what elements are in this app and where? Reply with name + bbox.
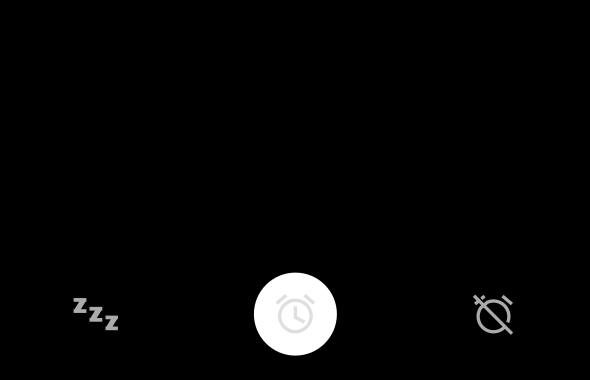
- button[interactable]: Alarm: [240, 259, 350, 369]
- button[interactable]: Stop alarm: [438, 268, 548, 364]
- button[interactable]: Snooze: [41, 266, 151, 362]
